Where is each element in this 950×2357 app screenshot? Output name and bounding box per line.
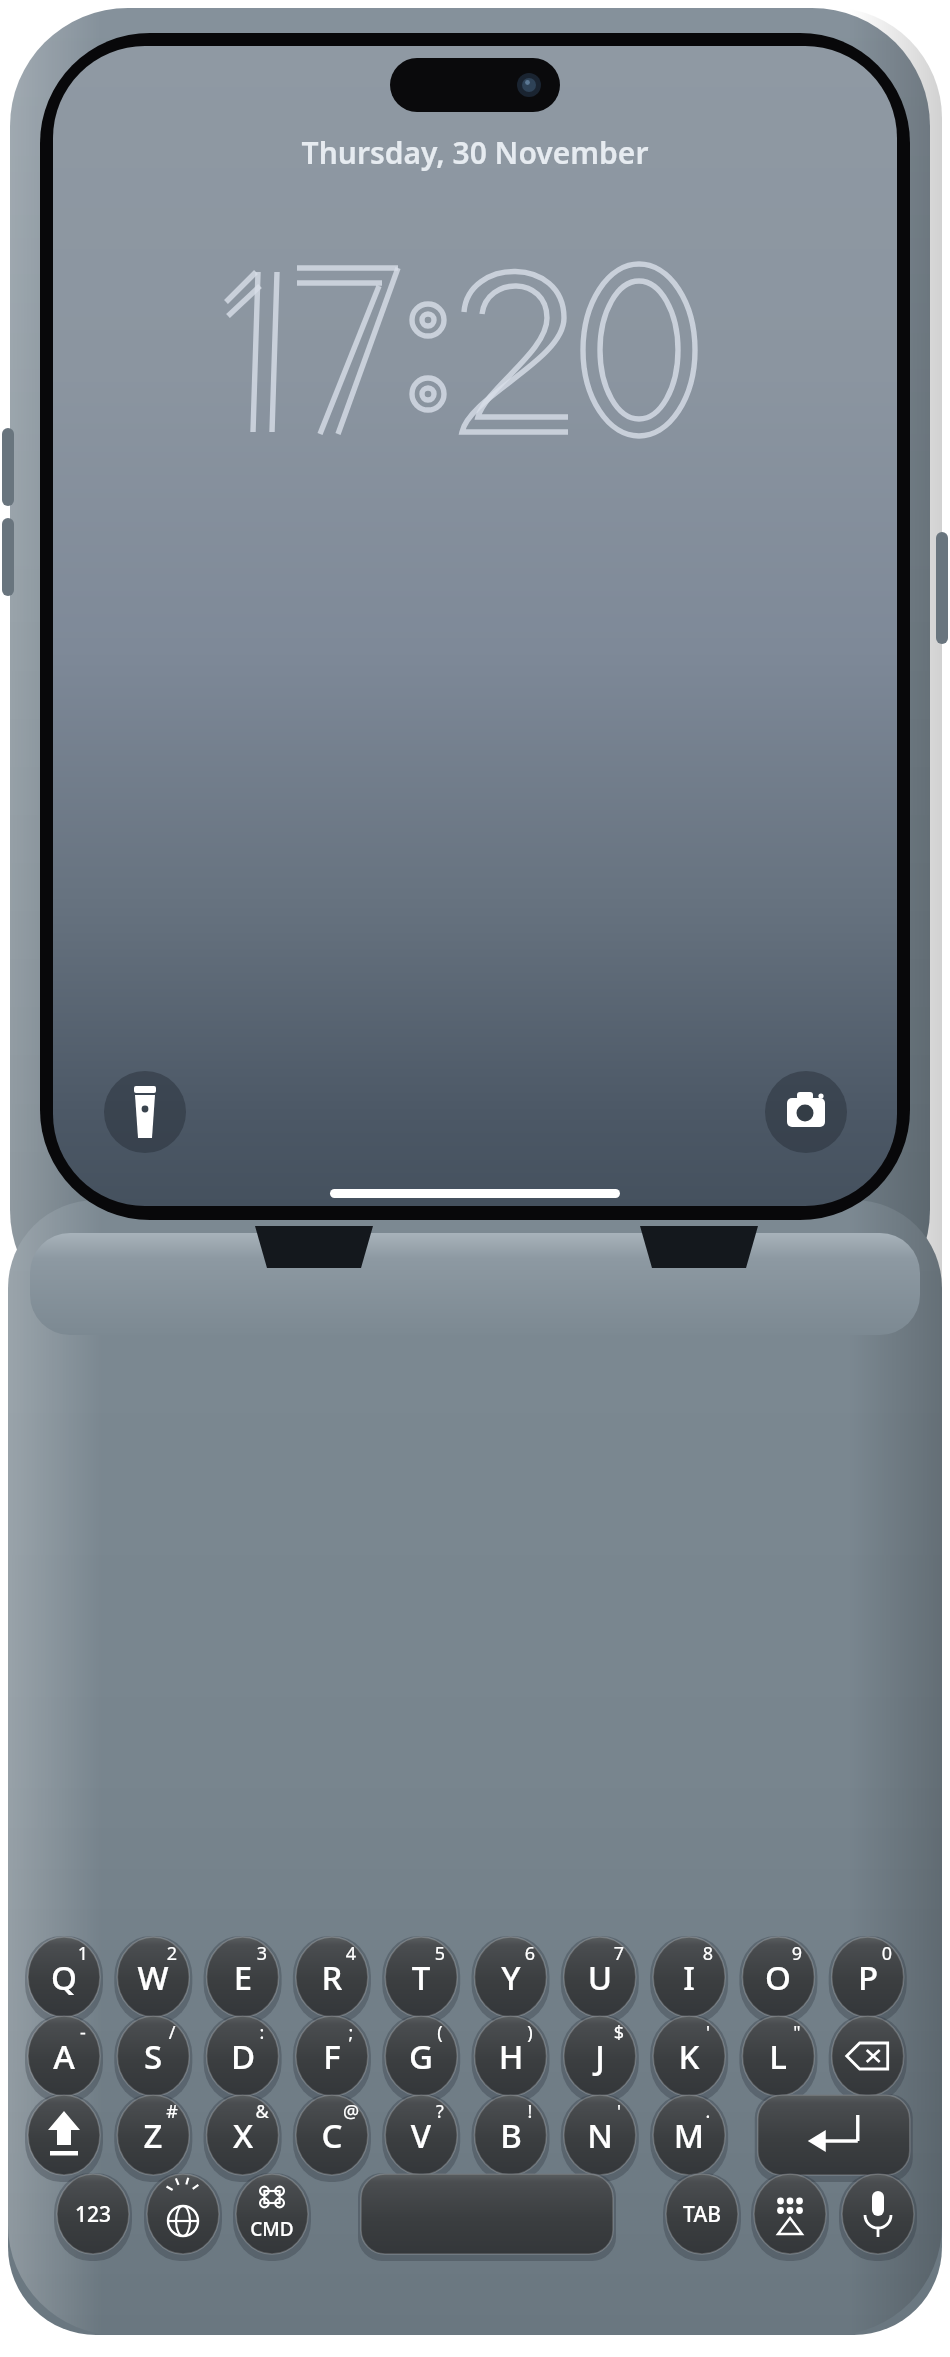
staticText: O	[738, 1955, 818, 2003]
staticText: 3	[246, 1941, 278, 1969]
staticText: N	[560, 2113, 640, 2161]
staticText: ;	[335, 2020, 367, 2048]
staticText: K	[649, 2034, 729, 2082]
staticText: .	[692, 2099, 724, 2127]
staticText: 5	[424, 1941, 456, 1969]
staticText: Thursday, 30 November	[237, 132, 713, 174]
staticText: /	[156, 2020, 188, 2048]
button[interactable]: C	[296, 2095, 368, 2175]
button[interactable]: P	[832, 1937, 904, 2017]
staticText: :	[246, 2020, 278, 2048]
button[interactable]: W	[117, 1937, 189, 2017]
button[interactable]: V	[385, 2095, 457, 2175]
staticText: V	[381, 2113, 461, 2161]
staticText: C	[292, 2113, 372, 2161]
staticText: 1	[67, 1941, 99, 1969]
staticText: S	[113, 2034, 193, 2082]
button[interactable]: Space	[361, 2174, 613, 2254]
staticText: R	[292, 1955, 372, 2003]
staticText: !	[514, 2099, 546, 2127]
button[interactable]: Command	[236, 2174, 308, 2254]
button[interactable]: I	[653, 1937, 725, 2017]
staticText: &	[246, 2099, 278, 2127]
staticText: 0	[871, 1941, 903, 1969]
staticText: J	[560, 2034, 640, 2082]
staticText: '	[603, 2099, 635, 2127]
staticText: T	[381, 1955, 461, 2003]
button[interactable]: K	[653, 2016, 725, 2096]
staticText: 2	[156, 1941, 188, 1969]
staticText: 7	[603, 1941, 635, 1969]
button[interactable]: O	[742, 1937, 814, 2017]
staticText: 9	[781, 1941, 813, 1969]
staticText: X	[203, 2113, 283, 2161]
staticText: $	[603, 2020, 635, 2048]
button[interactable]: Backspace	[832, 2016, 904, 2096]
button[interactable]: T	[385, 1937, 457, 2017]
button[interactable]: R	[296, 1937, 368, 2017]
button[interactable]: Language	[147, 2174, 219, 2254]
staticText: (	[424, 2020, 456, 2048]
button[interactable]: Camera	[765, 1071, 847, 1153]
staticText: ?	[424, 2099, 456, 2127]
staticText: 4	[335, 1941, 367, 1969]
staticText: TAB	[662, 2200, 742, 2230]
staticText: -	[67, 2020, 99, 2048]
button[interactable]: U	[564, 1937, 636, 2017]
staticText: P	[828, 1955, 908, 2003]
staticText: M	[649, 2113, 729, 2161]
button[interactable]: L	[742, 2016, 814, 2096]
staticText: G	[381, 2034, 461, 2082]
staticText: 8	[692, 1941, 724, 1969]
button[interactable]: 123	[57, 2174, 129, 2254]
button[interactable]: S	[117, 2016, 189, 2096]
staticText: "	[781, 2020, 813, 2048]
button[interactable]: H	[475, 2016, 547, 2096]
staticText: #	[156, 2099, 188, 2127]
staticText: 6	[514, 1941, 546, 1969]
staticText: Y	[471, 1955, 551, 2003]
button[interactable]: Z	[117, 2095, 189, 2175]
button[interactable]: M	[653, 2095, 725, 2175]
staticText: H	[471, 2034, 551, 2082]
button[interactable]: Enter	[758, 2095, 910, 2175]
staticText: Q	[24, 1955, 104, 2003]
staticText: A	[24, 2034, 104, 2082]
staticText: @	[335, 2099, 367, 2127]
button[interactable]: B	[475, 2095, 547, 2175]
button[interactable]: F	[296, 2016, 368, 2096]
staticText: 123	[53, 2200, 133, 2230]
button[interactable]: A	[28, 2016, 100, 2096]
button[interactable]: G	[385, 2016, 457, 2096]
button[interactable]: D	[207, 2016, 279, 2096]
staticText: B	[471, 2113, 551, 2161]
button[interactable]: Flashlight	[104, 1071, 186, 1153]
staticText: L	[738, 2034, 818, 2082]
staticText: D	[203, 2034, 283, 2082]
button[interactable]: Q	[28, 1937, 100, 2017]
button[interactable]: X	[207, 2095, 279, 2175]
staticText: E	[203, 1955, 283, 2003]
button[interactable]: Shift	[28, 2095, 100, 2175]
button[interactable]: E	[207, 1937, 279, 2017]
button[interactable]: Voice input	[842, 2174, 914, 2254]
staticText: W	[113, 1955, 193, 2003]
staticText: '	[692, 2020, 724, 2048]
button[interactable]: TAB	[666, 2174, 738, 2254]
staticText: U	[560, 1955, 640, 2003]
staticText: )	[514, 2020, 546, 2048]
button[interactable]: Emoji	[754, 2174, 826, 2254]
staticText: I	[649, 1955, 729, 2003]
staticText: CMD	[232, 2216, 312, 2244]
button[interactable]: J	[564, 2016, 636, 2096]
staticText: F	[292, 2034, 372, 2082]
button[interactable]: Y	[475, 1937, 547, 2017]
staticText: Z	[113, 2113, 193, 2161]
button[interactable]: N	[564, 2095, 636, 2175]
